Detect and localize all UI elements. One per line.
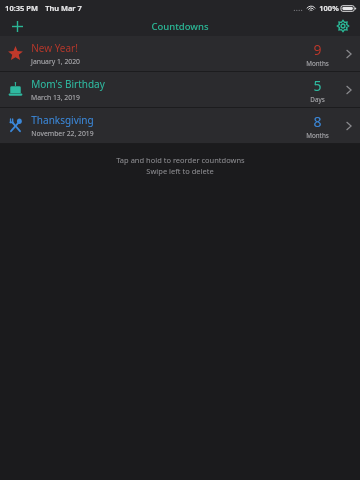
staticText: Days — [310, 95, 325, 104]
staticText: Months — [306, 131, 329, 140]
button[interactable]: New Year! — [0, 36, 360, 71]
staticText: Mom's Birthday — [31, 77, 105, 91]
staticText: 5 — [313, 76, 322, 95]
staticText: 9 — [313, 40, 322, 59]
staticText: Tap and hold to reorder countdowns — [116, 155, 245, 165]
staticText: Swipe left to delete — [146, 166, 214, 176]
button[interactable]: Thanksgiving — [0, 108, 360, 143]
button[interactable]: Settings — [326, 16, 360, 36]
staticText: November 22, 2019 — [31, 129, 94, 138]
staticText: January 1, 2020 — [31, 57, 80, 66]
staticText: New Year! — [31, 41, 78, 55]
staticText: Thanksgiving — [31, 113, 94, 127]
staticText: 100% — [319, 3, 339, 13]
staticText: 8 — [313, 112, 322, 131]
button[interactable]: Add countdown — [0, 16, 34, 36]
button[interactable]: Mom's Birthday — [0, 72, 360, 107]
staticText: 10:35 PM — [5, 3, 38, 13]
staticText: Months — [306, 59, 329, 68]
staticText: March 13, 2019 — [31, 93, 80, 102]
staticText: Thu Mar 7 — [45, 3, 82, 13]
staticText: Countdowns — [151, 20, 209, 33]
